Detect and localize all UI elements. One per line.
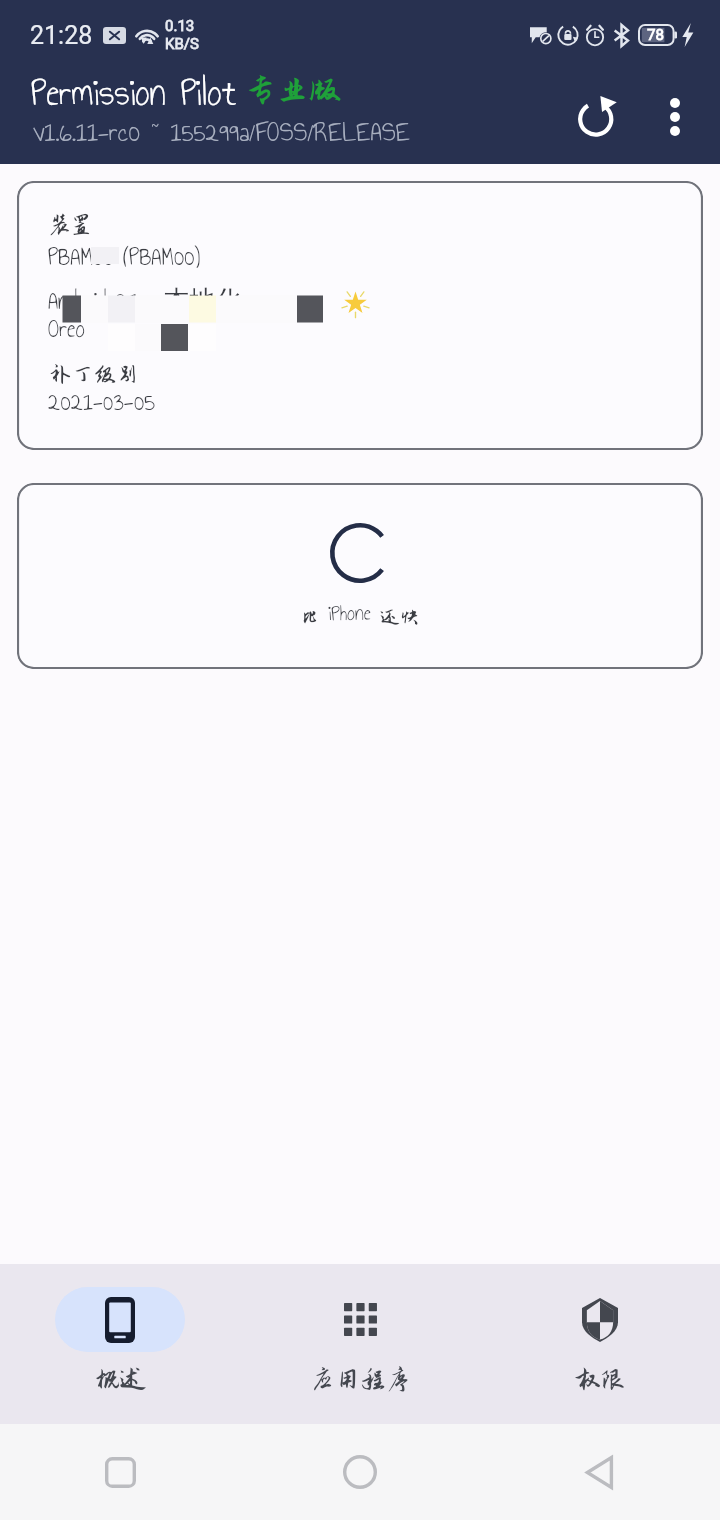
staticText: 应用程序 bbox=[310, 1365, 411, 1393]
staticText: KB/S bbox=[165, 35, 199, 53]
staticText: 补丁级别 bbox=[49, 362, 140, 387]
button[interactable]: Home bbox=[240, 1424, 480, 1520]
staticText: 2021-03-05 bbox=[48, 383, 155, 420]
staticText: PBAM00 (PBAM00) bbox=[48, 238, 201, 275]
button[interactable]: Refresh bbox=[558, 78, 636, 156]
staticText: Oreo bbox=[48, 310, 85, 347]
staticText: 21:28 bbox=[30, 21, 93, 50]
button[interactable]: Back bbox=[480, 1424, 720, 1520]
staticText: 概述 bbox=[95, 1365, 146, 1393]
staticText: 还快 bbox=[380, 607, 420, 629]
staticText: 0.13 bbox=[165, 17, 195, 35]
staticText: 权限 bbox=[575, 1365, 626, 1393]
button[interactable]: More options bbox=[636, 78, 714, 156]
button[interactable]: 概述 bbox=[0, 1264, 240, 1424]
staticText: Permission Pilot bbox=[31, 64, 237, 121]
button[interactable]: Recents bbox=[0, 1424, 240, 1520]
staticText: iPhone bbox=[320, 597, 380, 629]
staticText: 78 bbox=[647, 26, 664, 44]
staticText: 装置 bbox=[49, 213, 93, 237]
button[interactable]: 比 bbox=[17, 483, 703, 669]
staticText: v1.6.11-rc0 ~ 155299a/FOSS/RELEASE bbox=[33, 111, 411, 153]
staticText: Android 8.1.0 本地化 bbox=[48, 282, 242, 319]
button[interactable]: 权限 bbox=[480, 1264, 720, 1424]
button[interactable]: 应用程序 bbox=[240, 1264, 480, 1424]
staticText: 专业版 bbox=[244, 72, 342, 108]
button[interactable]: 装置 bbox=[17, 181, 703, 450]
staticText: 比 bbox=[300, 607, 320, 629]
